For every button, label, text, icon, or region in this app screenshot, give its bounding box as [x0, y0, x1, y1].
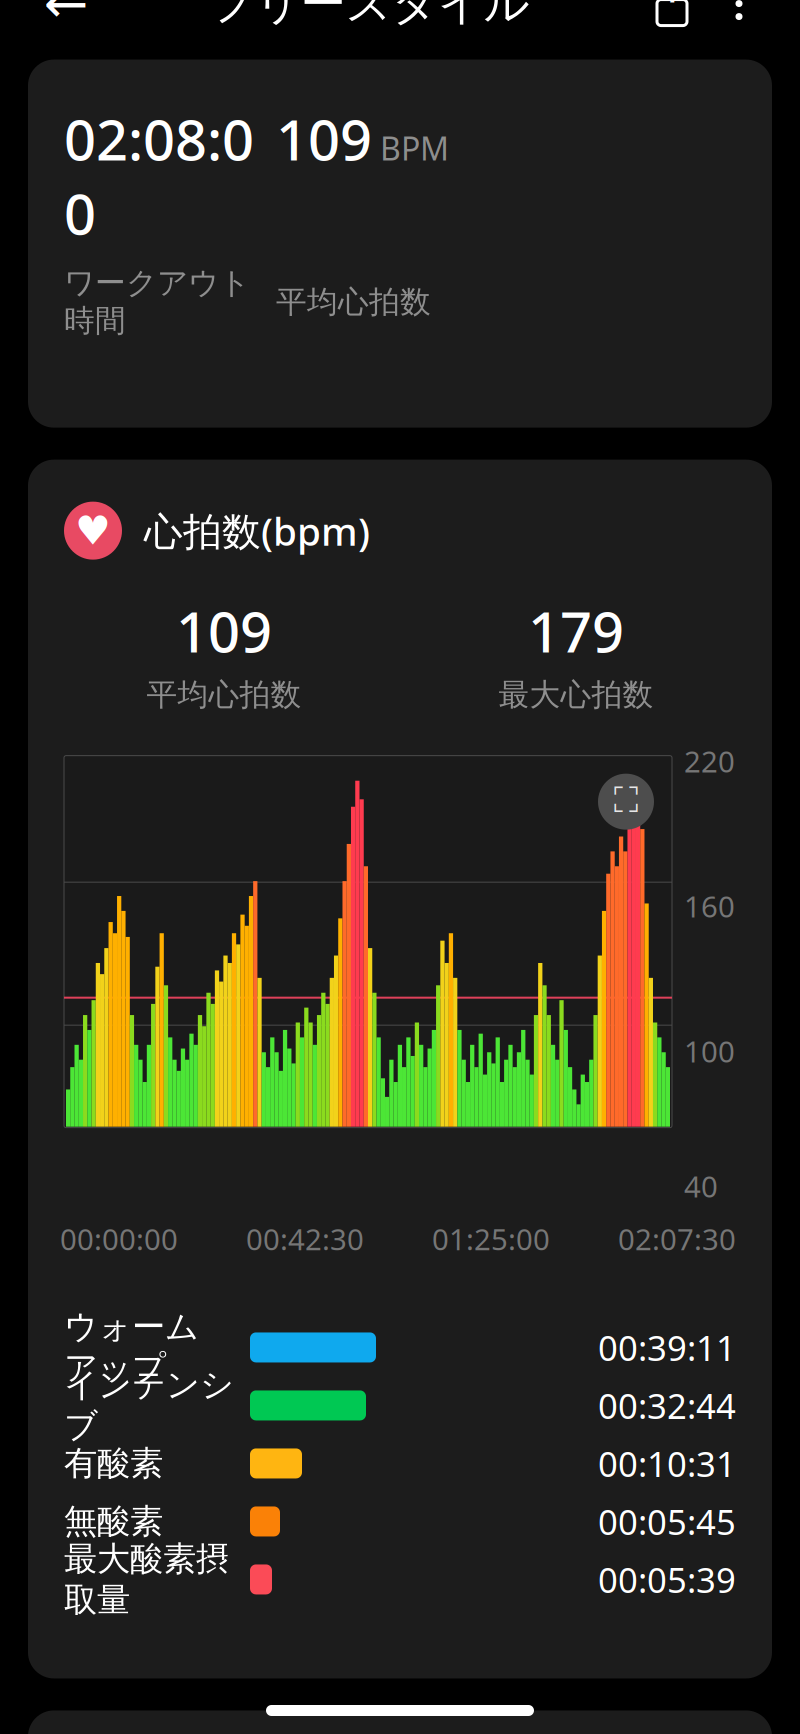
staticText: 02:08:00 [64, 102, 254, 250]
staticText: 40 [684, 1166, 718, 1205]
staticText: 最大心拍数 [498, 676, 653, 714]
staticText: 109 [176, 594, 272, 668]
staticText: 無酸素 [64, 1501, 163, 1542]
staticText: 00:42:30 [246, 1219, 364, 1258]
staticText: 有酸素 [64, 1443, 163, 1484]
staticText: ← [43, 0, 88, 34]
staticText: ワークアウト時間 [64, 264, 250, 340]
staticText: 00:39:11 [598, 1324, 736, 1370]
staticText: 心拍数(bpm) [144, 505, 370, 556]
staticText: 220 [684, 742, 735, 781]
staticText: 179 [528, 594, 624, 668]
staticText: ↑ [657, 0, 686, 10]
button[interactable]: Expand chart [598, 774, 654, 830]
staticText: 平均心拍数 [276, 283, 431, 321]
staticText: 00:05:39 [598, 1556, 736, 1602]
staticText: BPM [372, 127, 449, 169]
staticText: 109 [276, 102, 372, 176]
staticText: 00:05:45 [598, 1498, 736, 1544]
staticText: 01:25:00 [432, 1219, 550, 1258]
staticText: 最大酸素摂取量 [64, 1538, 229, 1620]
staticText: インテンシブ [64, 1364, 234, 1446]
staticText: 00:00:00 [60, 1219, 178, 1258]
staticText: ⛶ [614, 785, 638, 819]
button[interactable]: Share [636, 0, 708, 40]
button[interactable]: Back [30, 0, 102, 40]
staticText: 00:10:31 [598, 1440, 736, 1486]
staticText: ♥ [75, 508, 111, 553]
staticText: 00:32:44 [598, 1382, 736, 1428]
staticText: ウォームアップ [64, 1306, 199, 1388]
staticText: 02:07:30 [618, 1219, 736, 1258]
staticText: フリースタイル [208, 0, 529, 31]
button[interactable]: More options [708, 0, 770, 40]
staticText: 平均心拍数 [146, 676, 301, 714]
staticText: 160 [684, 887, 735, 926]
staticText: 100 [684, 1032, 735, 1071]
